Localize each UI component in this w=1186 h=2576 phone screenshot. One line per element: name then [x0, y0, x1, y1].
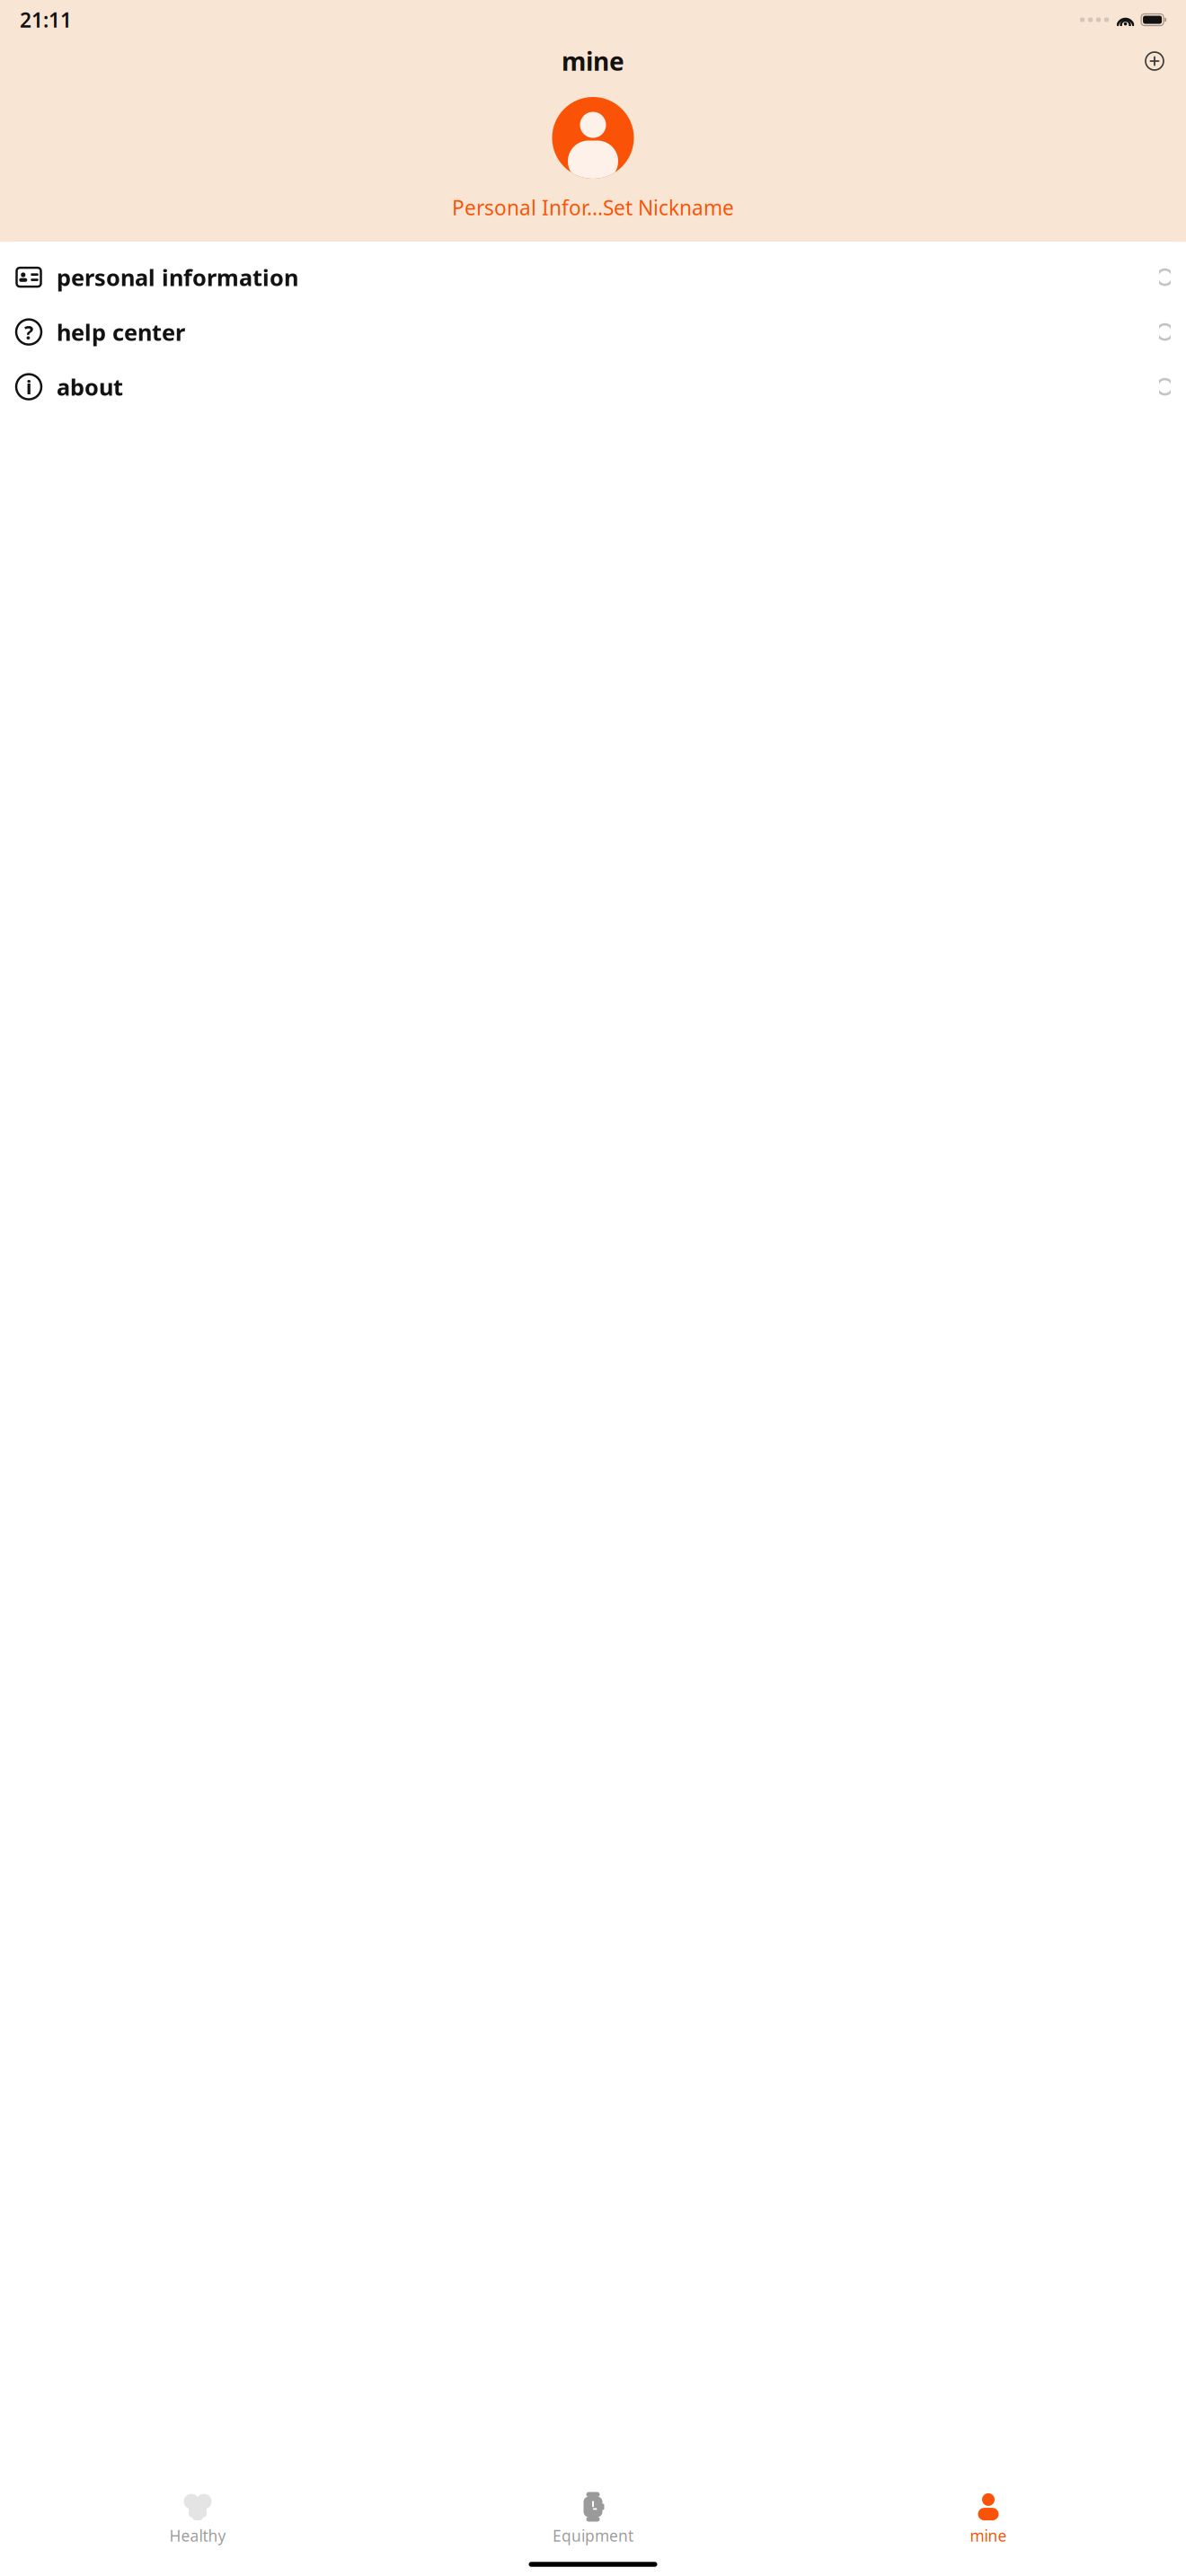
staticText: personal information: [57, 262, 298, 292]
staticText: ?: [24, 319, 33, 345]
staticText: mine: [562, 44, 624, 78]
button[interactable]: Equipment: [395, 2485, 791, 2552]
button[interactable]: Healthy: [0, 2485, 395, 2552]
button[interactable]: ?: [0, 305, 1186, 359]
staticText: about: [57, 372, 123, 402]
staticText: Personal Infor...Set Nickname: [452, 194, 734, 221]
button[interactable]: personal information: [0, 250, 1186, 305]
staticText: Healthy: [169, 2525, 226, 2546]
button[interactable]: Add: [1135, 41, 1174, 81]
staticText: i: [26, 374, 31, 399]
button[interactable]: mine: [791, 2485, 1186, 2552]
button[interactable]: i: [0, 359, 1186, 414]
staticText: 21:11: [20, 6, 72, 33]
staticText: mine: [970, 2525, 1007, 2546]
staticText: Equipment: [553, 2525, 633, 2546]
staticText: help center: [57, 317, 185, 347]
button[interactable]: Personal Infor...Set Nickname: [439, 190, 747, 226]
